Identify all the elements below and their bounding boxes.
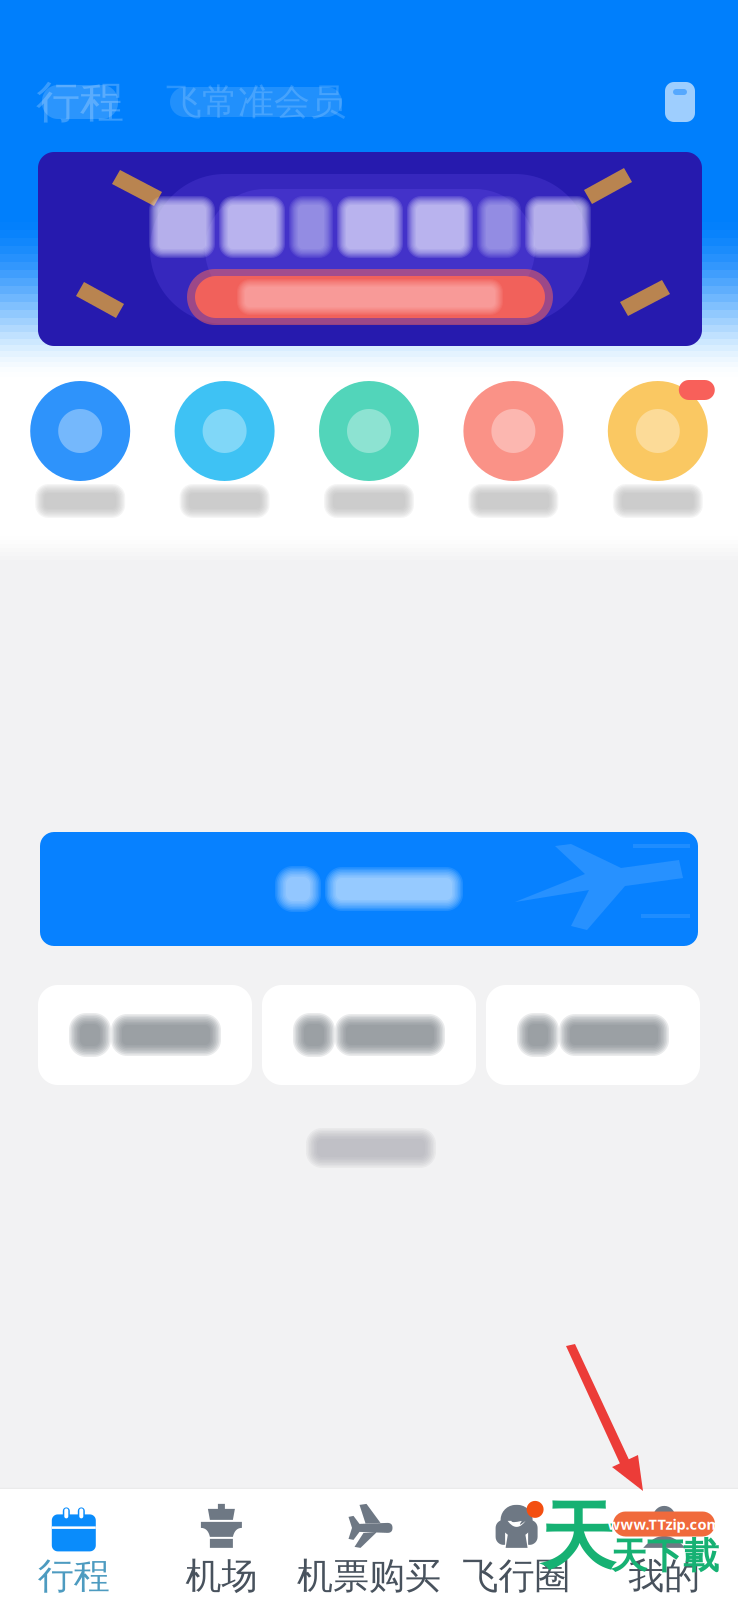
button[interactable]: 机票购买 bbox=[295, 1489, 443, 1600]
button[interactable]: 我的 bbox=[590, 1489, 738, 1600]
staticText: 机票购买 bbox=[297, 1554, 441, 1598]
button[interactable]: 航班动态 bbox=[297, 380, 441, 518]
button[interactable]: 行程 bbox=[32, 74, 128, 130]
button[interactable]: 酒店 bbox=[441, 380, 586, 518]
staticText: 行程 bbox=[38, 1554, 110, 1598]
button[interactable]: 机票 bbox=[8, 380, 152, 518]
button[interactable]: 行程助手 bbox=[486, 985, 700, 1085]
button[interactable]: 飞行圈 bbox=[443, 1489, 590, 1600]
staticText: 飞行圈 bbox=[463, 1554, 571, 1598]
staticText: 行程 bbox=[36, 75, 124, 129]
button[interactable]: 机场 bbox=[148, 1489, 295, 1600]
button[interactable]: 行程 bbox=[0, 1489, 148, 1600]
staticText: 天 bbox=[540, 1491, 615, 1583]
button[interactable]: 更多 bbox=[586, 380, 730, 518]
button[interactable]: 我的订单 bbox=[262, 985, 476, 1085]
staticText: www.TTzip.com bbox=[607, 1514, 720, 1534]
staticText: 天下載 bbox=[611, 1534, 719, 1578]
button[interactable]: Promotion bbox=[38, 152, 702, 346]
staticText: 飞常准会员 bbox=[166, 80, 346, 124]
button[interactable]: 添加行程 bbox=[38, 985, 252, 1085]
button[interactable]: Add itinerary bbox=[40, 832, 698, 946]
button[interactable]: 飞常准会员 bbox=[154, 74, 358, 130]
button[interactable]: 值机 bbox=[152, 380, 297, 518]
staticText: 我的 bbox=[628, 1554, 700, 1598]
staticText: 机场 bbox=[185, 1554, 257, 1598]
button[interactable]: Notifications bbox=[648, 70, 712, 134]
